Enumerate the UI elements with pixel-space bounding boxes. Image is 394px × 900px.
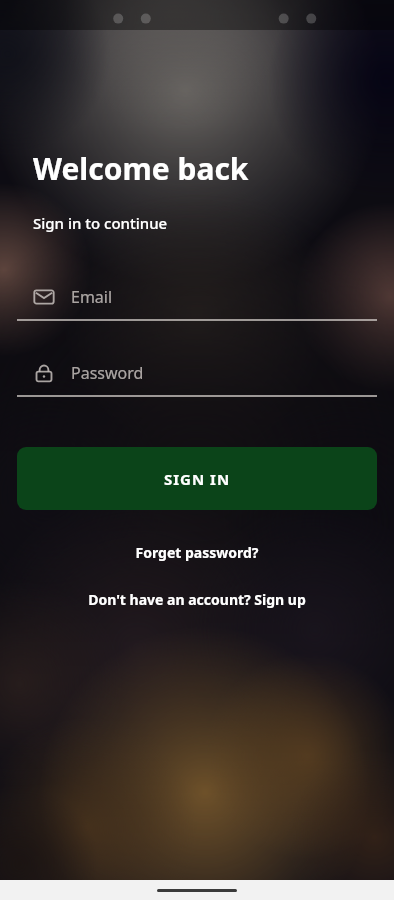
button[interactable]: Forget password?: [17, 543, 377, 562]
button[interactable]: SIGN IN: [17, 447, 377, 510]
staticText: SIGN IN: [164, 469, 231, 489]
button[interactable]: Email: [17, 275, 377, 321]
staticText: Email: [71, 286, 113, 308]
staticText: Sign in to continue: [33, 213, 168, 233]
staticText: Password: [71, 362, 144, 384]
staticText: Welcome back: [33, 148, 249, 189]
button[interactable]: Password: [17, 351, 377, 397]
staticText: Don't have an account? Sign up: [88, 590, 306, 609]
staticText: Forget password?: [135, 543, 259, 562]
button[interactable]: Don't have an account? Sign up: [17, 590, 377, 609]
